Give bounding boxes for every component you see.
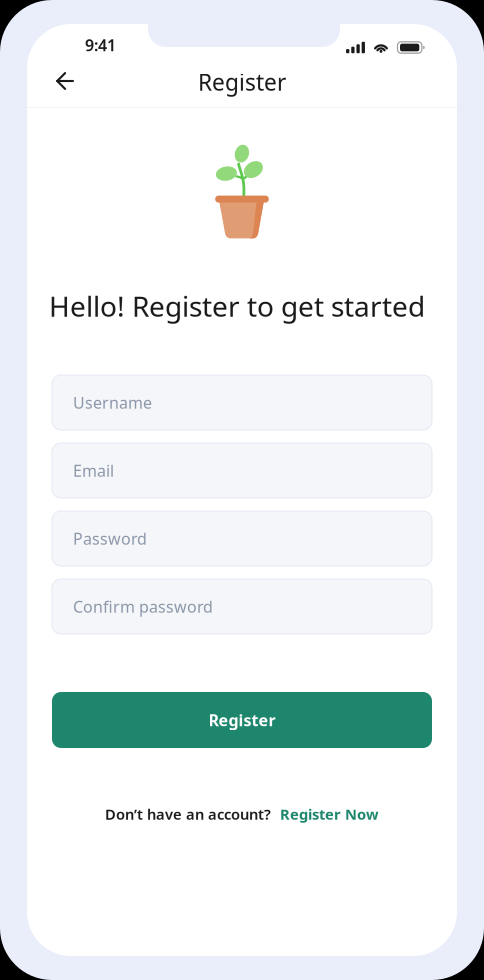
- button[interactable]: Don’t have an account?: [27, 800, 457, 828]
- button[interactable]: Password: [52, 511, 432, 566]
- staticText: Don’t have an account?: [105, 804, 271, 824]
- staticText: 9:41: [85, 34, 116, 56]
- button[interactable]: Email: [52, 443, 432, 498]
- staticText: Register: [208, 709, 275, 731]
- button[interactable]: Confirm password: [52, 579, 432, 634]
- staticText: Confirm password: [73, 596, 213, 617]
- staticText: Hello! Register to get started: [49, 287, 425, 325]
- button[interactable]: Username: [52, 375, 432, 430]
- staticText: Register: [198, 67, 286, 97]
- staticText: Username: [73, 392, 152, 413]
- staticText: Password: [73, 528, 147, 549]
- staticText: Register Now: [280, 804, 379, 824]
- button[interactable]: Back: [43, 59, 87, 103]
- button[interactable]: Register: [52, 692, 432, 748]
- staticText: Email: [73, 460, 114, 481]
